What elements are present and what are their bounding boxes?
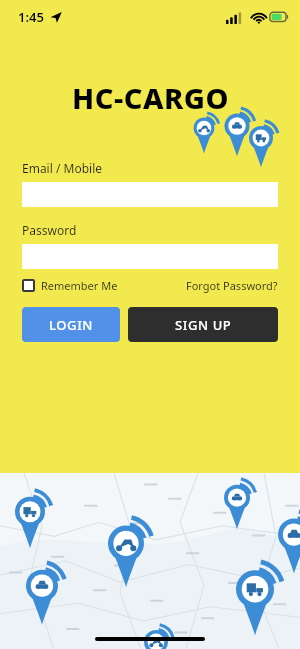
staticText: Remember Me — [41, 278, 118, 293]
staticText: LOGIN — [49, 316, 94, 334]
button[interactable]: LOGIN — [22, 307, 120, 342]
staticText: Password — [22, 222, 77, 238]
staticText: 1:45 — [18, 8, 44, 26]
button[interactable]: SIGN UP — [128, 307, 278, 342]
staticText: SIGN UP — [175, 316, 232, 334]
staticText: HC-CARGO — [72, 78, 229, 117]
staticText: Forgot Password? — [186, 278, 278, 293]
button[interactable]: Forgot Password? — [186, 278, 278, 293]
button[interactable]: Remember Me — [22, 278, 118, 293]
staticText: Email / Mobile — [22, 160, 103, 176]
